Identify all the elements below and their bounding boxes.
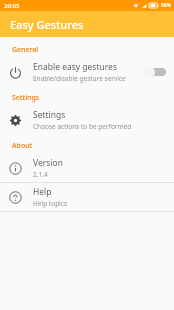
staticText: Enable/disable gesture service (33, 74, 126, 83)
other: Help (9, 191, 22, 204)
button[interactable]: Enable easy gestures toggle (144, 65, 168, 79)
staticText: Choose actions to be performed (33, 122, 132, 131)
other: Settings (9, 114, 22, 127)
other: Version info (9, 162, 22, 175)
staticText: 2.1.4 (33, 170, 48, 179)
other: Power (9, 66, 22, 79)
staticText: 98% (161, 2, 171, 9)
button[interactable]: Settings (0, 106, 174, 134)
staticText: Enable easy gestures (33, 61, 117, 73)
button[interactable]: Version info (0, 154, 174, 182)
staticText: Help (33, 186, 52, 198)
staticText: Version (33, 157, 63, 169)
staticText: Help topics (33, 199, 68, 208)
button[interactable]: Help (0, 183, 174, 211)
staticText: General (12, 45, 174, 55)
staticText: Settings (33, 109, 66, 121)
staticText: About (12, 141, 174, 151)
staticText: Easy Gestures (10, 17, 84, 32)
staticText: 20:05 (4, 2, 20, 10)
staticText: Settings (12, 93, 174, 103)
button[interactable]: Power (0, 58, 174, 86)
